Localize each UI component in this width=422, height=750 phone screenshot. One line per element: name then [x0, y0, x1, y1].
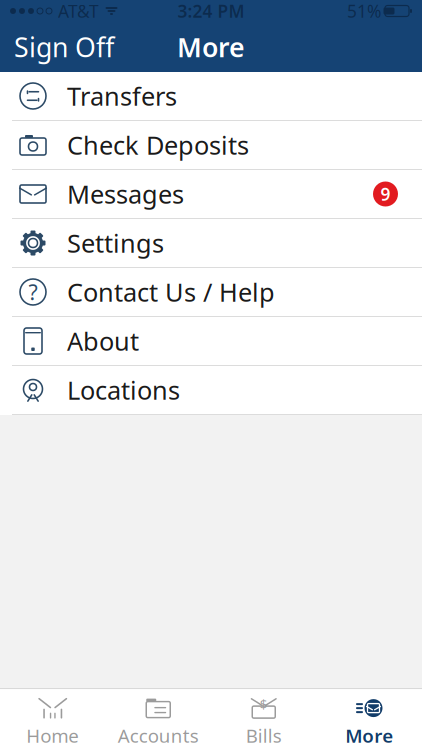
staticText: 51%	[347, 0, 381, 22]
staticText: Locations	[67, 373, 180, 407]
button[interactable]: Home	[0, 689, 105, 750]
staticText: AT&T	[58, 0, 99, 22]
button[interactable]: Transfers	[0, 72, 422, 121]
button[interactable]: Sign Off	[0, 17, 128, 77]
button[interactable]: Settings	[0, 219, 422, 268]
staticText: Accounts	[118, 723, 199, 748]
staticText: Contact Us / Help	[67, 275, 275, 309]
staticText: Bills	[246, 723, 282, 748]
staticText: Settings	[67, 226, 164, 260]
button[interactable]: Check Deposits	[0, 121, 422, 170]
staticText: Sign Off	[14, 29, 114, 65]
staticText: 9	[380, 182, 390, 205]
staticText: Check Deposits	[67, 128, 249, 162]
button[interactable]: Messages	[0, 170, 422, 219]
button[interactable]: Locations	[0, 366, 422, 415]
staticText: More	[345, 723, 393, 748]
staticText: 3:24 PM	[177, 0, 244, 22]
staticText: More	[177, 29, 245, 65]
staticText: Home	[26, 723, 79, 748]
staticText: $	[260, 695, 268, 713]
button[interactable]: More	[316, 689, 422, 750]
button[interactable]: About	[0, 317, 422, 366]
button[interactable]: $	[211, 689, 316, 750]
button[interactable]: ?	[0, 268, 422, 317]
button[interactable]: Accounts	[105, 689, 211, 750]
staticText: About	[67, 324, 139, 358]
staticText: Messages	[67, 177, 184, 211]
staticText: ?	[28, 278, 37, 306]
staticText: Transfers	[67, 79, 177, 113]
